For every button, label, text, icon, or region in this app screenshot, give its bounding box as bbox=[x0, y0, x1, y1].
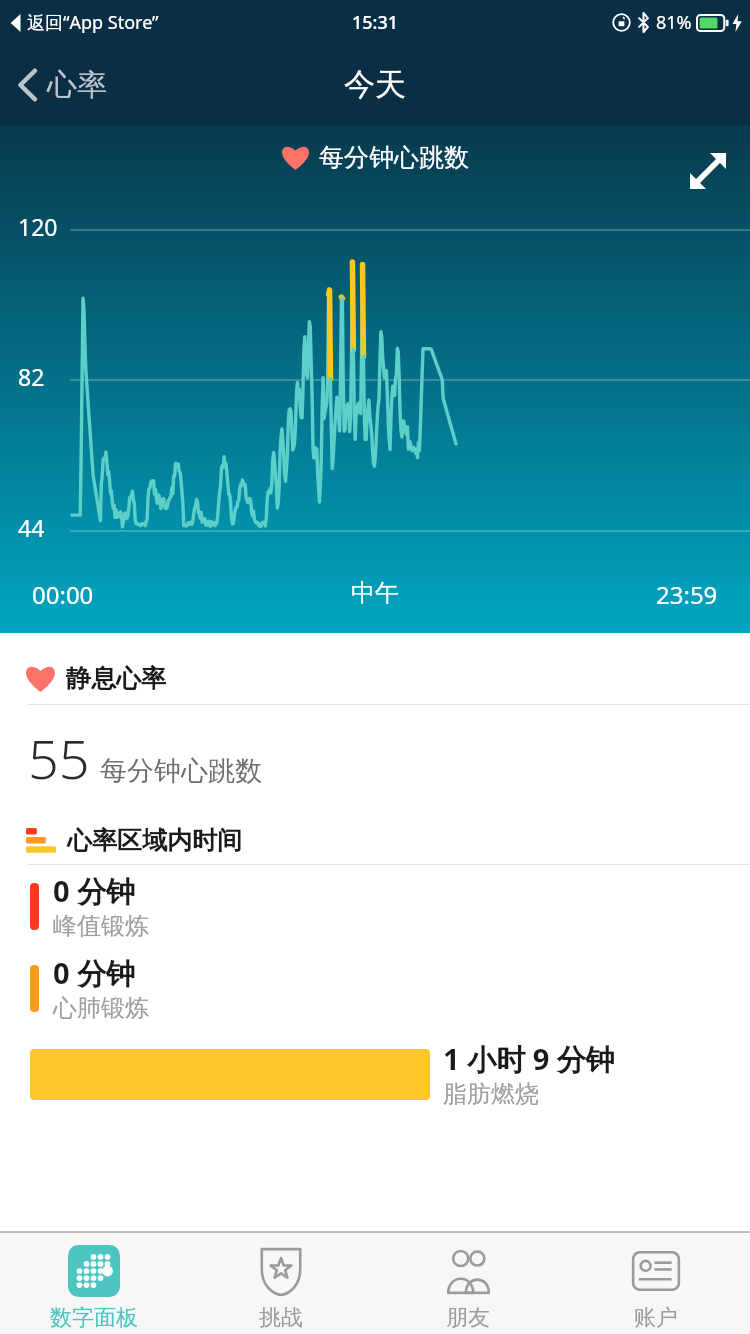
staticText: 返回“App Store” bbox=[27, 10, 159, 35]
staticText: 脂肪燃烧 bbox=[443, 1079, 539, 1109]
staticText: 挑战 bbox=[259, 1304, 303, 1332]
staticText: 今天 bbox=[344, 65, 406, 104]
staticText: 44 bbox=[18, 512, 45, 543]
button[interactable]: 0 分钟 bbox=[0, 865, 750, 947]
staticText: 00:00 bbox=[32, 578, 94, 611]
button[interactable]: 数字面板 bbox=[0, 1233, 187, 1334]
staticText: 数字面板 bbox=[50, 1304, 138, 1332]
button[interactable]: 1 小时 9 分钟 bbox=[0, 1029, 750, 1119]
staticText: 心肺锻炼 bbox=[53, 993, 149, 1023]
staticText: 1 小时 9 分钟 bbox=[443, 1039, 615, 1079]
staticText: 静息心率 bbox=[66, 663, 166, 694]
staticText: 中午 bbox=[94, 578, 656, 608]
button[interactable]: 朋友 bbox=[374, 1233, 562, 1334]
staticText: 23:59 bbox=[656, 578, 718, 611]
staticText: 账户 bbox=[634, 1304, 678, 1332]
staticText: 55 bbox=[28, 721, 90, 795]
button[interactable]: 55 bbox=[0, 705, 750, 817]
staticText: 朋友 bbox=[446, 1304, 490, 1332]
staticText: 0 分钟 bbox=[53, 871, 136, 911]
staticText: 心率 bbox=[47, 66, 107, 104]
button[interactable]: 心率 bbox=[14, 60, 111, 110]
staticText: 0 分钟 bbox=[53, 953, 136, 993]
staticText: 15:31 bbox=[352, 10, 399, 35]
staticText: 81% bbox=[656, 10, 692, 35]
button[interactable]: 0 分钟 bbox=[0, 947, 750, 1029]
staticText: 每分钟心跳数 bbox=[100, 754, 262, 788]
staticText: 心率区域内时间 bbox=[67, 825, 242, 856]
button[interactable]: 静息心率 bbox=[0, 633, 750, 704]
button[interactable]: 心率区域内时间 bbox=[0, 817, 750, 864]
staticText: 每分钟心跳数 bbox=[319, 142, 469, 173]
button[interactable]: Expand chart bbox=[680, 143, 736, 199]
staticText: 120 bbox=[18, 211, 58, 242]
staticText: 82 bbox=[18, 361, 45, 392]
button[interactable]: 账户 bbox=[562, 1233, 750, 1334]
button[interactable]: 挑战 bbox=[187, 1233, 374, 1334]
staticText: 峰值锻炼 bbox=[53, 911, 149, 941]
